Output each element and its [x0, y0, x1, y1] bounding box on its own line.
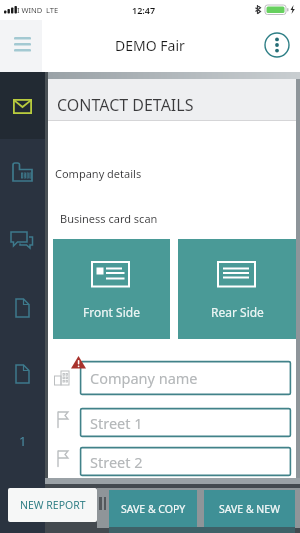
staticText: Company details	[55, 166, 142, 181]
button[interactable]	[0, 407, 45, 474]
button[interactable]	[0, 206, 45, 273]
button[interactable]: Front Side	[53, 239, 170, 339]
staticText: 12:47	[132, 4, 156, 16]
staticText: Street 1	[90, 413, 143, 433]
staticText: Company name	[90, 368, 198, 388]
staticText: Street 2	[90, 452, 143, 472]
button[interactable]	[0, 340, 45, 407]
staticText: NEW REPORT	[20, 498, 86, 512]
staticText: DEMO Fair	[115, 36, 185, 55]
staticText: Business card scan	[60, 211, 158, 226]
button[interactable]: Street 1	[80, 408, 291, 437]
button[interactable]: SAVE & COPY	[109, 490, 197, 527]
button[interactable]	[0, 273, 45, 340]
button[interactable]: Company name	[80, 361, 291, 395]
button[interactable]	[263, 31, 291, 59]
button[interactable]: Street 2	[80, 447, 291, 476]
staticText: SAVE & NEW	[219, 502, 280, 516]
staticText: SAVE & COPY	[121, 502, 186, 516]
button[interactable]	[0, 139, 45, 206]
button[interactable]: SAVE & NEW	[204, 490, 295, 527]
button[interactable]	[6, 28, 40, 62]
staticText: Front Side	[83, 304, 140, 320]
button[interactable]: Rear Side	[178, 239, 296, 339]
button[interactable]	[0, 72, 45, 139]
button[interactable]: NEW REPORT	[8, 488, 97, 522]
staticText: I WIND LTE	[17, 5, 59, 15]
staticText: CONTACT DETAILS	[57, 94, 194, 116]
staticText: 1	[19, 432, 27, 450]
staticText: Rear Side	[211, 304, 264, 320]
